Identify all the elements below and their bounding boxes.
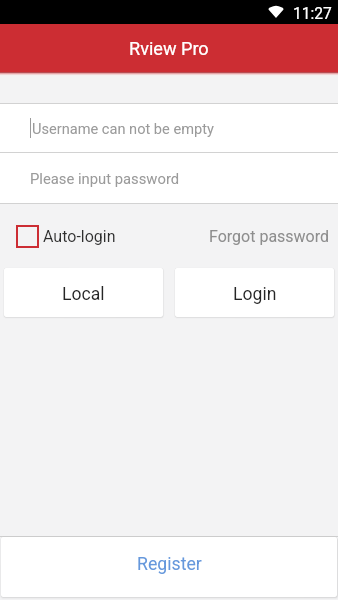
- staticText: Username can not be empty: [32, 120, 214, 137]
- staticText: Local: [62, 284, 105, 305]
- other: Wi-Fi signal: [268, 5, 284, 18]
- staticText: Register: [137, 554, 202, 575]
- button[interactable]: Please input password: [0, 153, 338, 203]
- staticText: Login: [233, 284, 277, 305]
- staticText: Auto-login: [43, 227, 116, 246]
- button[interactable]: Login: [175, 268, 334, 317]
- staticText: Forgot password: [209, 227, 330, 246]
- staticText: Rview Pro: [129, 38, 209, 59]
- button[interactable]: Username can not be empty: [0, 104, 338, 152]
- button[interactable]: Auto-login: [0, 219, 124, 254]
- button[interactable]: Register: [1, 537, 337, 597]
- button[interactable]: Local: [4, 268, 163, 317]
- button[interactable]: Forgot password: [201, 219, 338, 254]
- staticText: 11:27: [293, 5, 332, 23]
- staticText: Please input password: [30, 170, 180, 187]
